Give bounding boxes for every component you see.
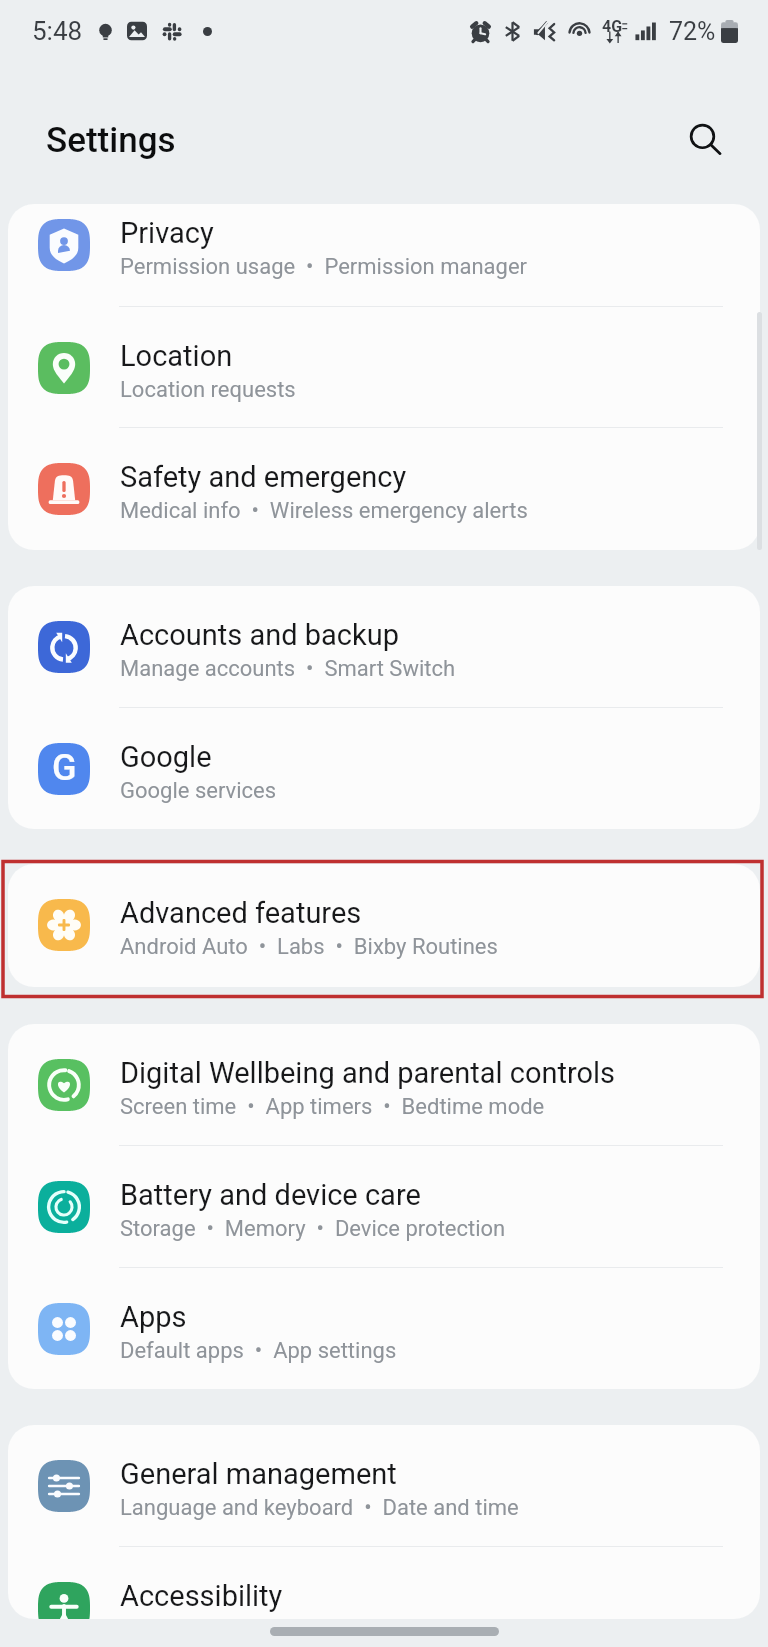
staticText: Accessibility [120,1579,283,1613]
button[interactable]: Search [681,116,729,164]
staticText: Battery and device care [120,1178,421,1212]
staticText: Safety and emergency [120,460,407,494]
staticText: General management [120,1457,397,1491]
staticText: Digital Wellbeing and parental controls [120,1056,616,1090]
staticText: Privacy [120,216,214,250]
staticText: Advanced features [120,896,362,930]
staticText: Location requests [120,377,296,403]
staticText: 4G [602,17,623,36]
staticText: Screen time • App timers • Bedtime mode [120,1094,545,1120]
staticText: Default apps • App settings [120,1338,397,1364]
staticText: Google [120,740,212,774]
staticText: Settings [46,120,176,161]
staticText: Medical info • Wireless emergency alerts [120,498,528,524]
staticText: Accounts and backup [120,618,400,652]
staticText: Google services [120,778,277,804]
button[interactable]: Privacy [8,204,760,307]
staticText: G [52,747,77,789]
button[interactable]: Digital Wellbeing and parental controls [8,1024,760,1146]
button[interactable]: Battery and device care [8,1146,760,1268]
staticText: Location [120,339,233,373]
staticText: Android Auto • Labs • Bixby Routines [120,934,498,960]
staticText: Manage accounts • Smart Switch [120,656,456,682]
button[interactable]: Location [8,307,760,428]
staticText: Storage • Memory • Device protection [120,1216,506,1242]
button[interactable]: Accounts and backup [8,586,760,708]
button[interactable]: Accessibility [8,1547,760,1619]
staticText: 72% [669,17,716,46]
button[interactable]: General management [8,1425,760,1547]
staticText: Language and keyboard • Date and time [120,1495,519,1521]
button[interactable]: Safety and emergency [8,428,760,550]
staticText: Apps [120,1300,187,1334]
button[interactable]: Apps [8,1268,760,1389]
staticText: 5:48 [32,16,83,46]
button[interactable]: Advanced features [8,864,760,987]
staticText: Permission usage • Permission manager [120,254,527,280]
button[interactable]: G [8,708,760,829]
